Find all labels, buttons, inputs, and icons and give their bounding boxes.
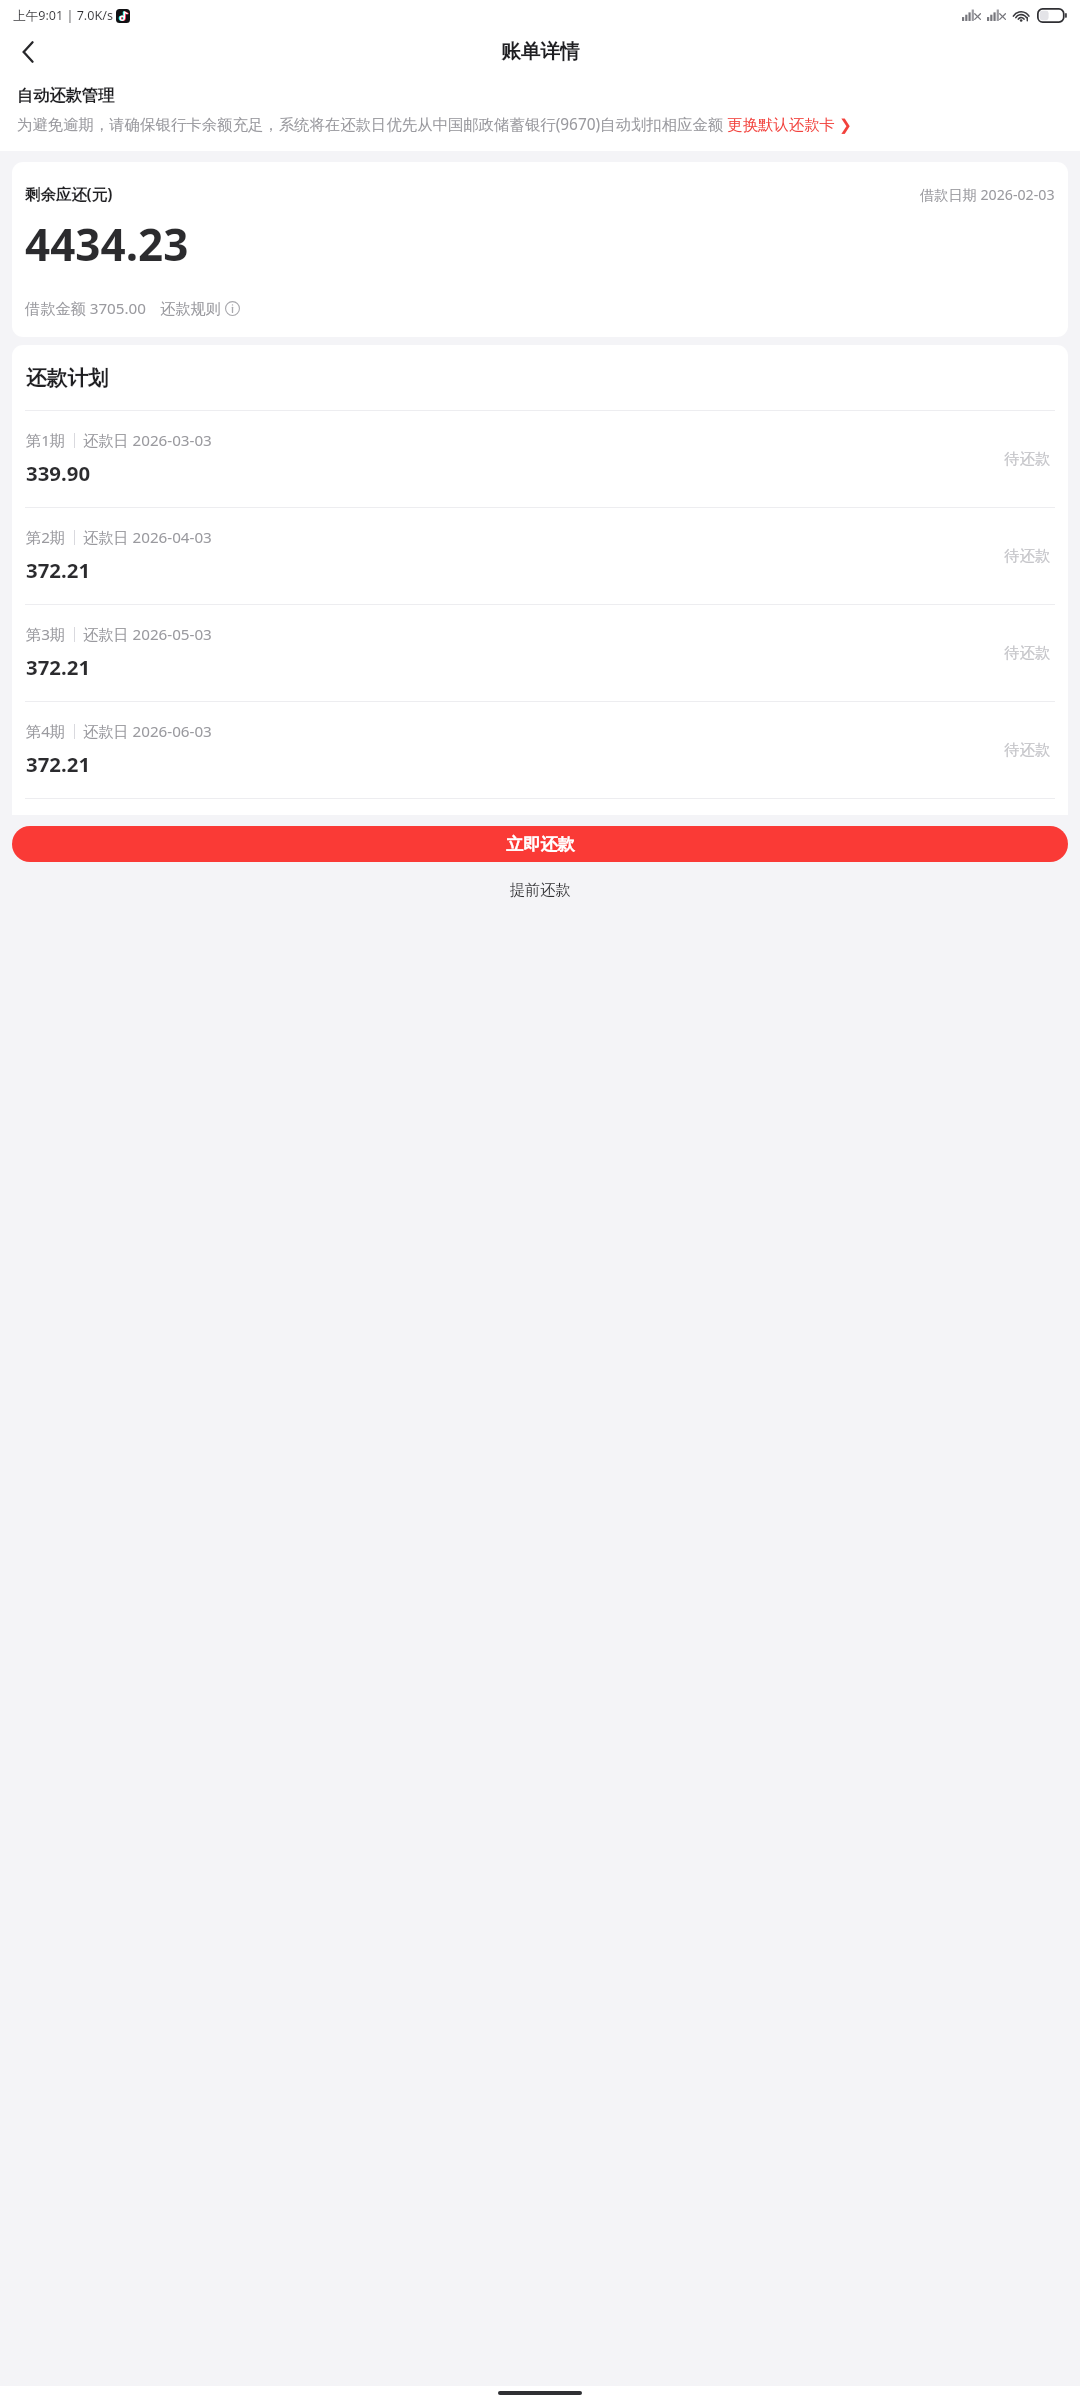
staticText: 自动还款管理 bbox=[17, 85, 115, 105]
staticText: 立即还款 bbox=[506, 833, 575, 855]
button[interactable]: 第2期 bbox=[12, 508, 1068, 604]
staticText: 上午9:01 | 7.0K/s bbox=[13, 7, 113, 24]
staticText: 借款日期 2026-02-03 bbox=[920, 185, 1055, 204]
button[interactable]: 还款规则 bbox=[160, 299, 240, 318]
staticText: 第2期 bbox=[26, 527, 66, 548]
staticText: 待还款 bbox=[1004, 740, 1051, 759]
staticText: 账单详情 bbox=[501, 39, 580, 64]
button[interactable]: 第4期 bbox=[12, 702, 1068, 798]
staticText: 339.90 bbox=[26, 459, 91, 487]
staticText: 还款日 2026-05-03 bbox=[83, 624, 212, 645]
staticText: 待还款 bbox=[1004, 449, 1051, 468]
staticText: 待还款 bbox=[1004, 643, 1051, 662]
staticText: 借款金额 3705.00 bbox=[25, 298, 146, 319]
button[interactable]: 第3期 bbox=[12, 605, 1068, 701]
staticText: 372.21 bbox=[26, 556, 91, 584]
staticText: 还款日 2026-03-03 bbox=[83, 430, 212, 451]
button[interactable]: 提前还款 bbox=[0, 876, 1080, 903]
staticText: 第4期 bbox=[26, 721, 66, 742]
staticText: 372.21 bbox=[26, 750, 91, 778]
staticText: 待还款 bbox=[1004, 546, 1051, 565]
staticText: 372.21 bbox=[26, 653, 91, 681]
staticText: 第3期 bbox=[26, 624, 66, 645]
button[interactable]: 返回 bbox=[6, 30, 50, 73]
button[interactable]: 立即还款 bbox=[12, 826, 1068, 862]
staticText: 还款日 2026-06-03 bbox=[83, 721, 212, 742]
staticText: 第1期 bbox=[26, 430, 66, 451]
staticText: 还款规则 bbox=[160, 299, 221, 318]
staticText: 还款计划 bbox=[26, 365, 109, 391]
button[interactable]: 为避免逾期，请确保银行卡余额充足，系统将在还款日优先从中国邮政储蓄银行(9670… bbox=[17, 114, 852, 135]
staticText: 4434.23 bbox=[25, 214, 189, 274]
staticText: 还款日 2026-04-03 bbox=[83, 527, 212, 548]
button[interactable]: 剩余应还(元) bbox=[12, 162, 1068, 337]
staticText: 剩余应还(元) bbox=[25, 184, 113, 205]
button[interactable]: 第1期 bbox=[12, 411, 1068, 507]
